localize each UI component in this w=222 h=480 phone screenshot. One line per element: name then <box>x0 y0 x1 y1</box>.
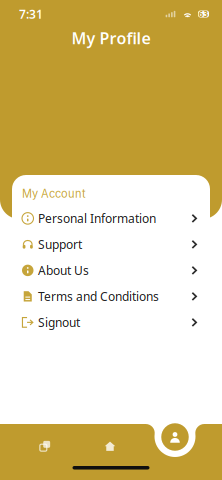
button[interactable]: Personal Information <box>12 205 210 231</box>
staticText: My Profile <box>71 27 150 49</box>
staticText: 63 <box>198 9 208 19</box>
button[interactable]: Profile <box>157 419 193 455</box>
button[interactable]: Cards <box>22 433 68 459</box>
staticText: Personal Information <box>38 210 156 226</box>
button[interactable]: Terms and Conditions <box>12 283 210 309</box>
button[interactable]: Home <box>87 433 133 459</box>
staticText: 7:31 <box>19 6 43 22</box>
staticText: My Account <box>22 187 86 200</box>
button[interactable]: About Us <box>12 257 210 283</box>
button[interactable]: Signout <box>12 309 210 335</box>
staticText: Terms and Conditions <box>38 288 159 304</box>
staticText: About Us <box>38 262 89 278</box>
staticText: Support <box>38 236 82 252</box>
staticText: Signout <box>38 314 80 330</box>
button[interactable]: Support <box>12 231 210 257</box>
